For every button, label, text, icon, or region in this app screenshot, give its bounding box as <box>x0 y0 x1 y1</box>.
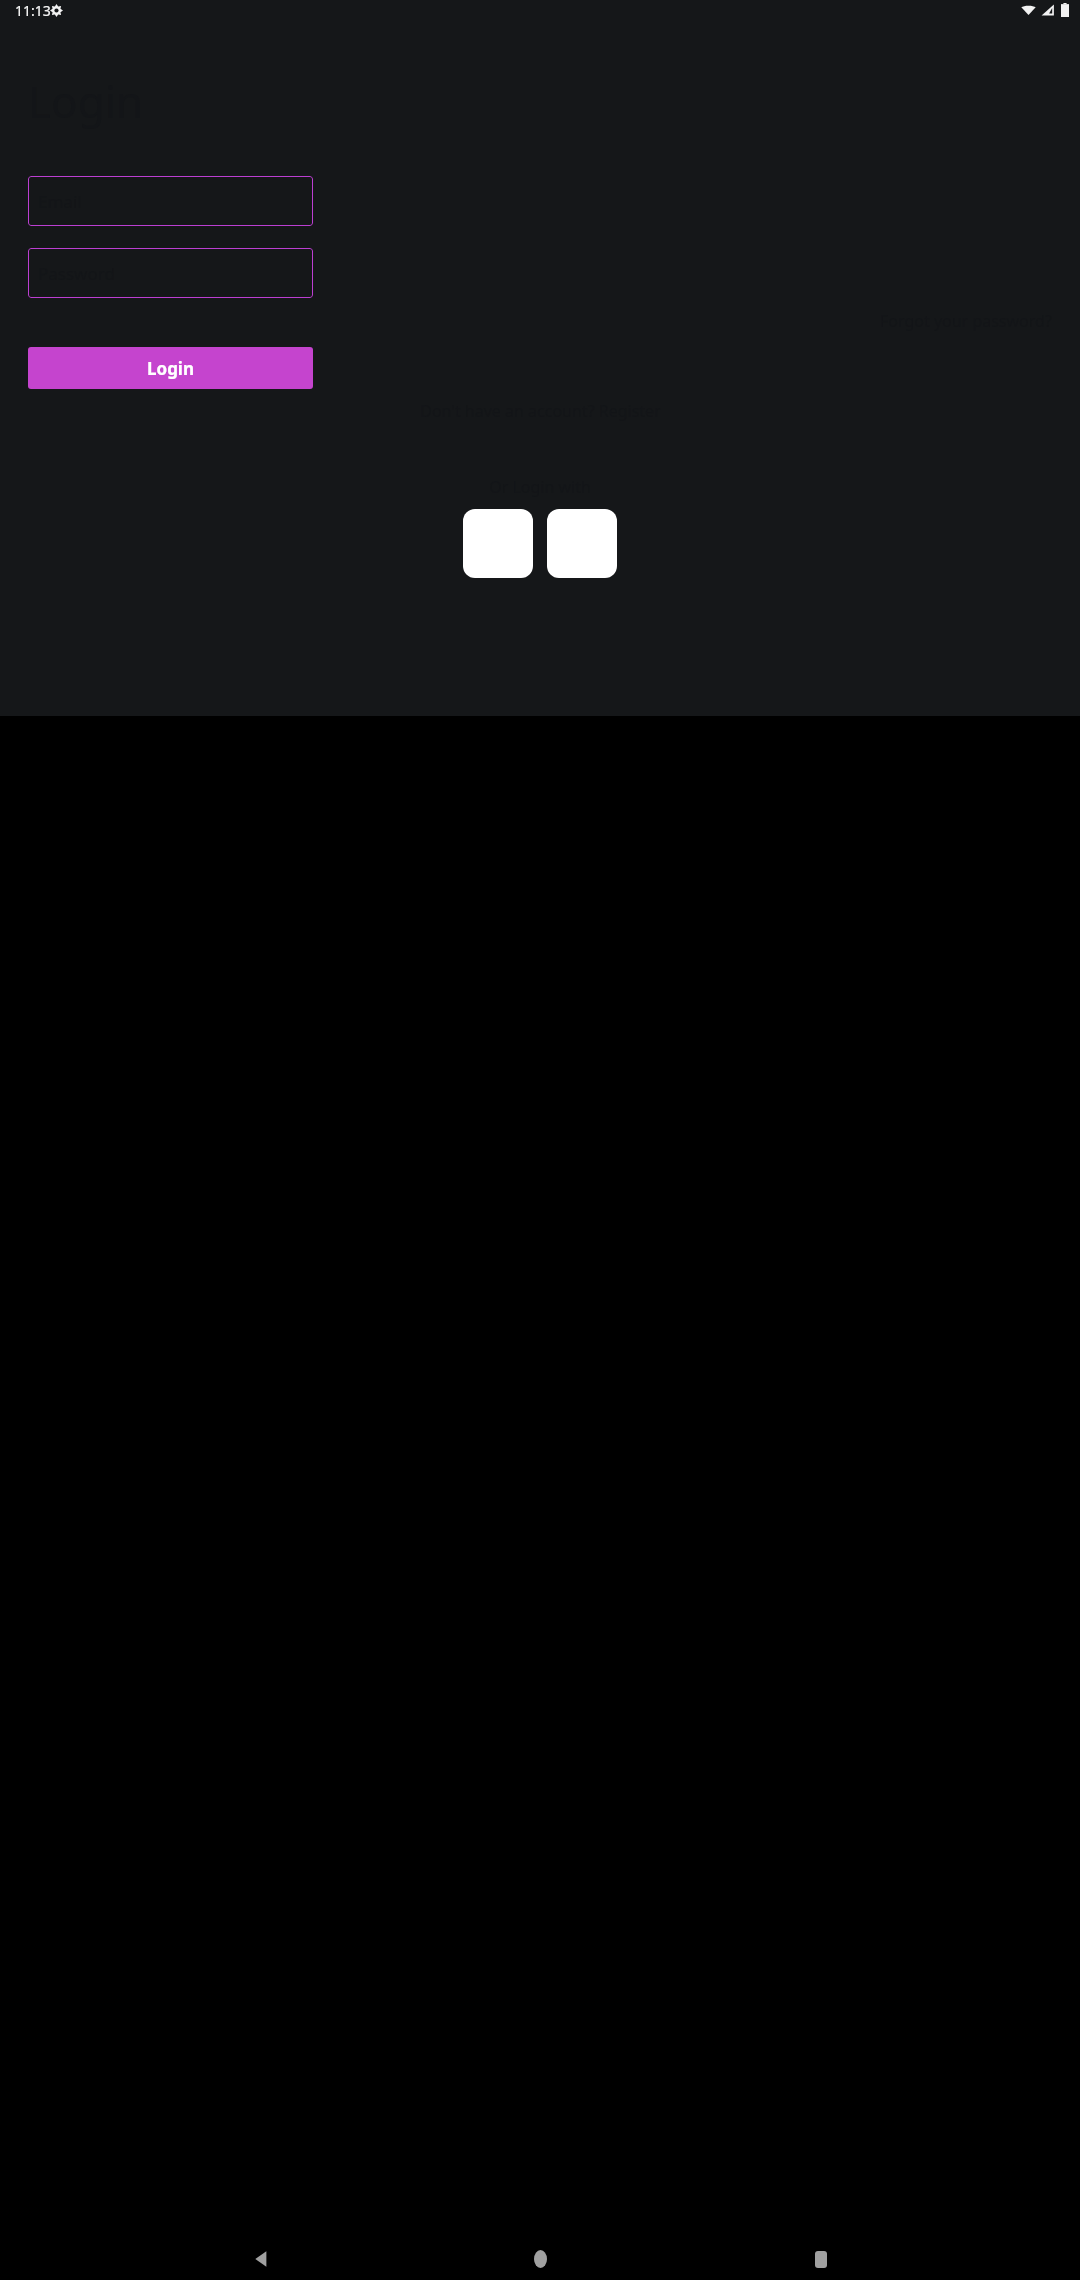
button[interactable]: Login with Google <box>547 509 617 578</box>
button[interactable]: Password <box>28 248 313 298</box>
button[interactable]: Login with Facebook <box>463 509 533 578</box>
button[interactable]: Recent apps <box>800 2238 842 2280</box>
button[interactable]: Home <box>519 2238 561 2280</box>
button[interactable]: Login <box>28 347 313 389</box>
button[interactable]: Back <box>239 2238 281 2280</box>
button[interactable]: Email <box>28 176 313 226</box>
other: Settings <box>50 4 63 17</box>
staticText: 11:13 <box>15 1 51 20</box>
staticText: Login <box>147 357 195 380</box>
